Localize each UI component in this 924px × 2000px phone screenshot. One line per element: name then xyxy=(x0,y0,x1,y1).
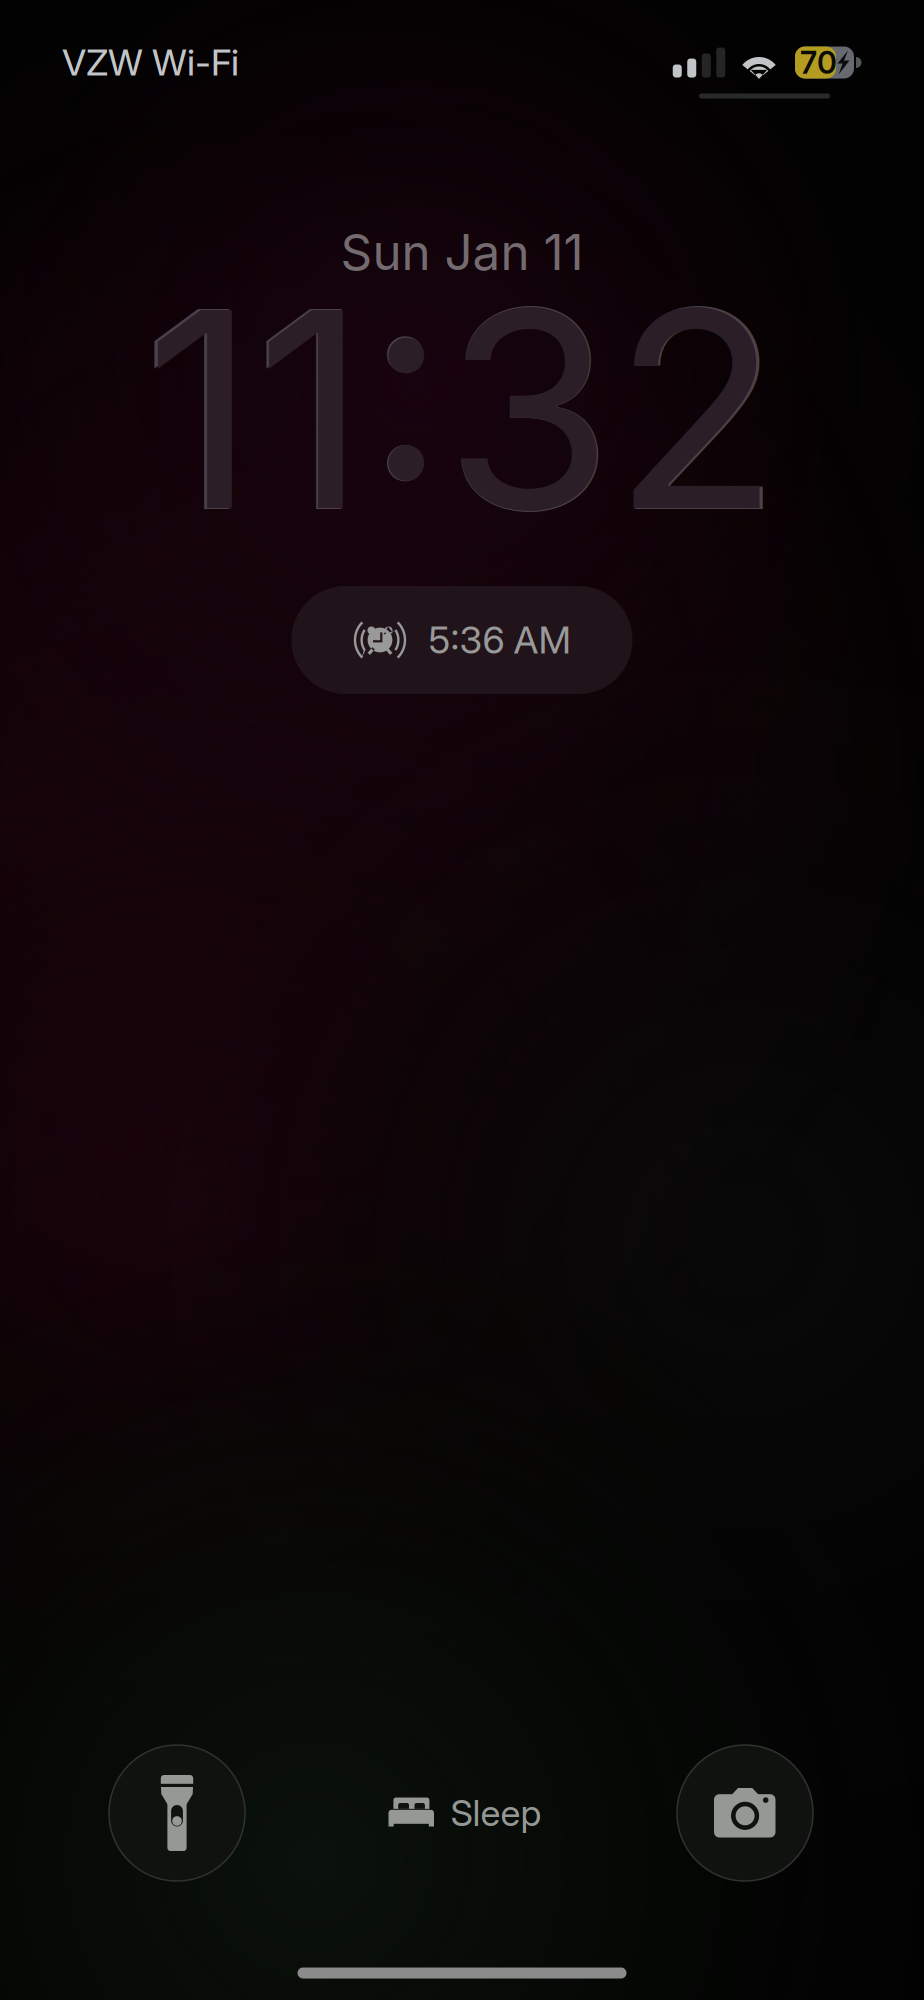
staticText: 70 xyxy=(800,44,837,81)
button[interactable]: Camera xyxy=(677,1745,813,1881)
button[interactable]: Flashlight xyxy=(109,1745,245,1881)
staticText: VZW Wi-Fi xyxy=(62,41,239,84)
staticText: Sleep xyxy=(450,1791,541,1835)
staticText: 5:36 AM xyxy=(428,617,570,663)
staticText: 11:32 xyxy=(141,242,782,575)
staticText: 11:32 xyxy=(145,244,779,573)
button[interactable]: Sleep xyxy=(365,1778,565,1848)
button[interactable]: 5:36 AM xyxy=(291,586,632,694)
staticText: Sun Jan 11 xyxy=(340,222,583,282)
